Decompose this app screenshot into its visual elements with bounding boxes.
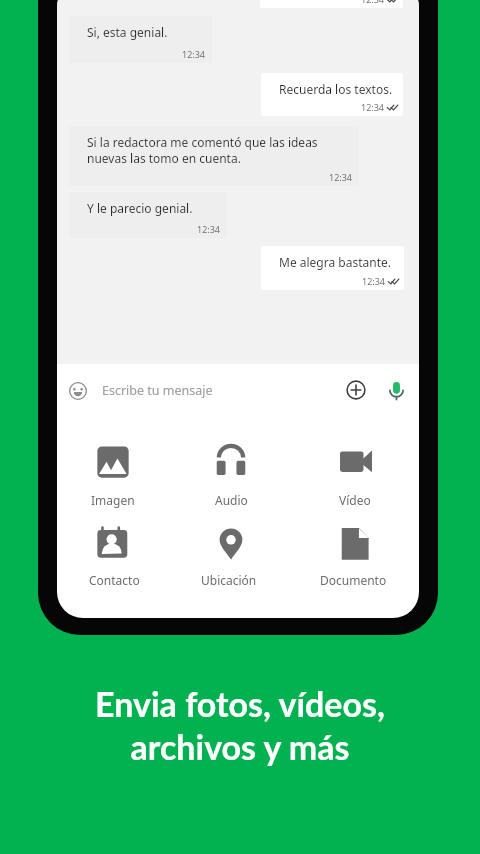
staticText: Imagen	[91, 492, 135, 508]
staticText: 12:34	[329, 171, 353, 183]
staticText: Si, esta genial.	[87, 24, 168, 40]
button[interactable]: Y le parecio genial.	[69, 192, 227, 238]
staticText: Me alegra bastante.	[279, 254, 391, 270]
staticText: 12:34	[182, 48, 206, 60]
staticText: Vídeo	[339, 492, 371, 508]
button[interactable]: Documento	[305, 520, 401, 578]
staticText: 12:34	[362, 275, 386, 287]
staticText: Documento	[320, 572, 387, 588]
staticText: Contacto	[89, 572, 140, 588]
button[interactable]: Si, esta genial.	[69, 16, 212, 63]
staticText: Escribe tu mensaje	[102, 382, 213, 399]
staticText: Recuerda los textos.	[279, 81, 393, 97]
button[interactable]: Si la redactora me comentó que las ideas…	[69, 126, 359, 186]
button[interactable]: Attach file	[342, 376, 370, 404]
button[interactable]: Me alegra bastante.	[261, 246, 404, 290]
staticText: Si la redactora me comentó que las ideas…	[87, 134, 318, 166]
button[interactable]: Emoji	[64, 377, 92, 405]
staticText: Y le parecio genial.	[87, 200, 193, 216]
button[interactable]: Record voice message	[382, 377, 410, 405]
staticText: 12:34	[361, 0, 385, 5]
button[interactable]: Recuerda hacerlo.	[260, 0, 403, 8]
staticText: Audio	[215, 492, 248, 508]
button[interactable]: Recuerda los textos.	[261, 73, 403, 116]
button[interactable]: Contacto	[66, 518, 162, 576]
staticText: 12:34	[361, 101, 385, 113]
button[interactable]: Vídeo	[307, 438, 403, 496]
button[interactable]: Imagen	[65, 438, 161, 496]
button[interactable]: Audio	[183, 437, 279, 495]
staticText: 12:34	[197, 223, 221, 235]
button[interactable]: Ubicación	[181, 520, 277, 578]
staticText: Ubicación	[201, 572, 257, 588]
staticText: Envia fotos, vídeos, archivos y más	[0, 683, 480, 767]
